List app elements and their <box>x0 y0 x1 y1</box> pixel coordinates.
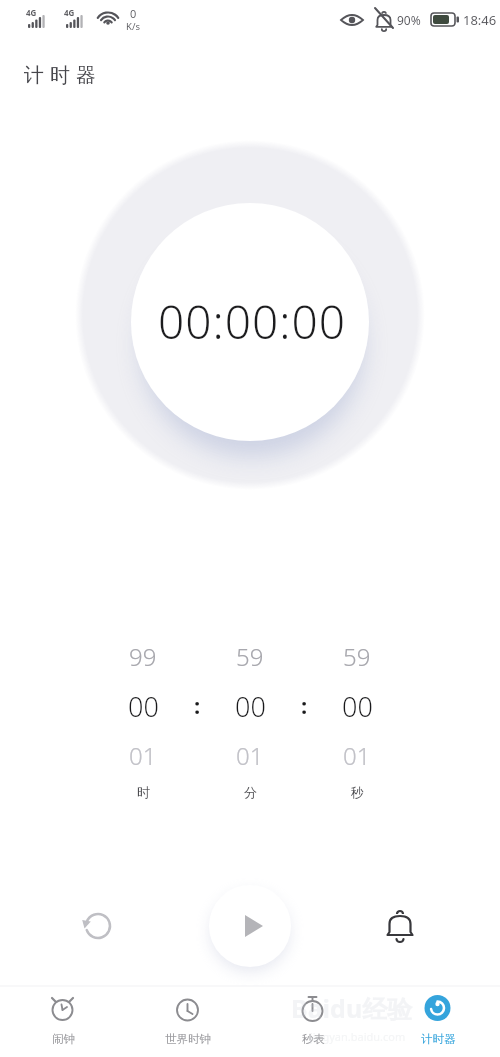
button[interactable] <box>0 985 125 1057</box>
staticText: 计时器 <box>421 1032 456 1046</box>
button[interactable] <box>378 904 422 948</box>
staticText: 00:00:00 <box>158 290 347 353</box>
staticText: 00 <box>235 688 266 725</box>
staticText: Baidu经验 <box>291 991 413 1025</box>
button[interactable] <box>125 985 250 1057</box>
button[interactable] <box>250 985 375 1057</box>
staticText: 计时器 <box>21 63 99 88</box>
staticText: 0 <box>130 6 137 21</box>
staticText: 01 <box>236 739 264 772</box>
staticText: 99 <box>129 640 157 673</box>
staticText: 18:46 <box>463 11 497 29</box>
staticText: 4G <box>26 7 37 18</box>
staticText: K/s <box>126 20 140 33</box>
staticText: 秒表 <box>302 1032 325 1046</box>
staticText: 世界时钟 <box>165 1032 211 1046</box>
staticText: 闹钟 <box>52 1032 75 1046</box>
staticText: : <box>194 690 201 720</box>
staticText: 90% <box>397 12 421 28</box>
staticText: 00 <box>342 688 373 725</box>
staticText: 01 <box>343 739 371 772</box>
button[interactable] <box>75 904 119 948</box>
staticText: 时 <box>137 784 150 800</box>
staticText: 秒 <box>351 784 364 800</box>
staticText: 01 <box>129 739 157 772</box>
staticText: 59 <box>343 640 371 673</box>
staticText: jingyan.baidu.com <box>310 1029 406 1044</box>
button[interactable] <box>209 885 291 967</box>
staticText: 00 <box>128 688 159 725</box>
staticText: 59 <box>236 640 264 673</box>
staticText: : <box>301 690 308 720</box>
staticText: 4G <box>64 7 75 18</box>
staticText: 分 <box>244 784 257 800</box>
button[interactable] <box>375 985 500 1057</box>
